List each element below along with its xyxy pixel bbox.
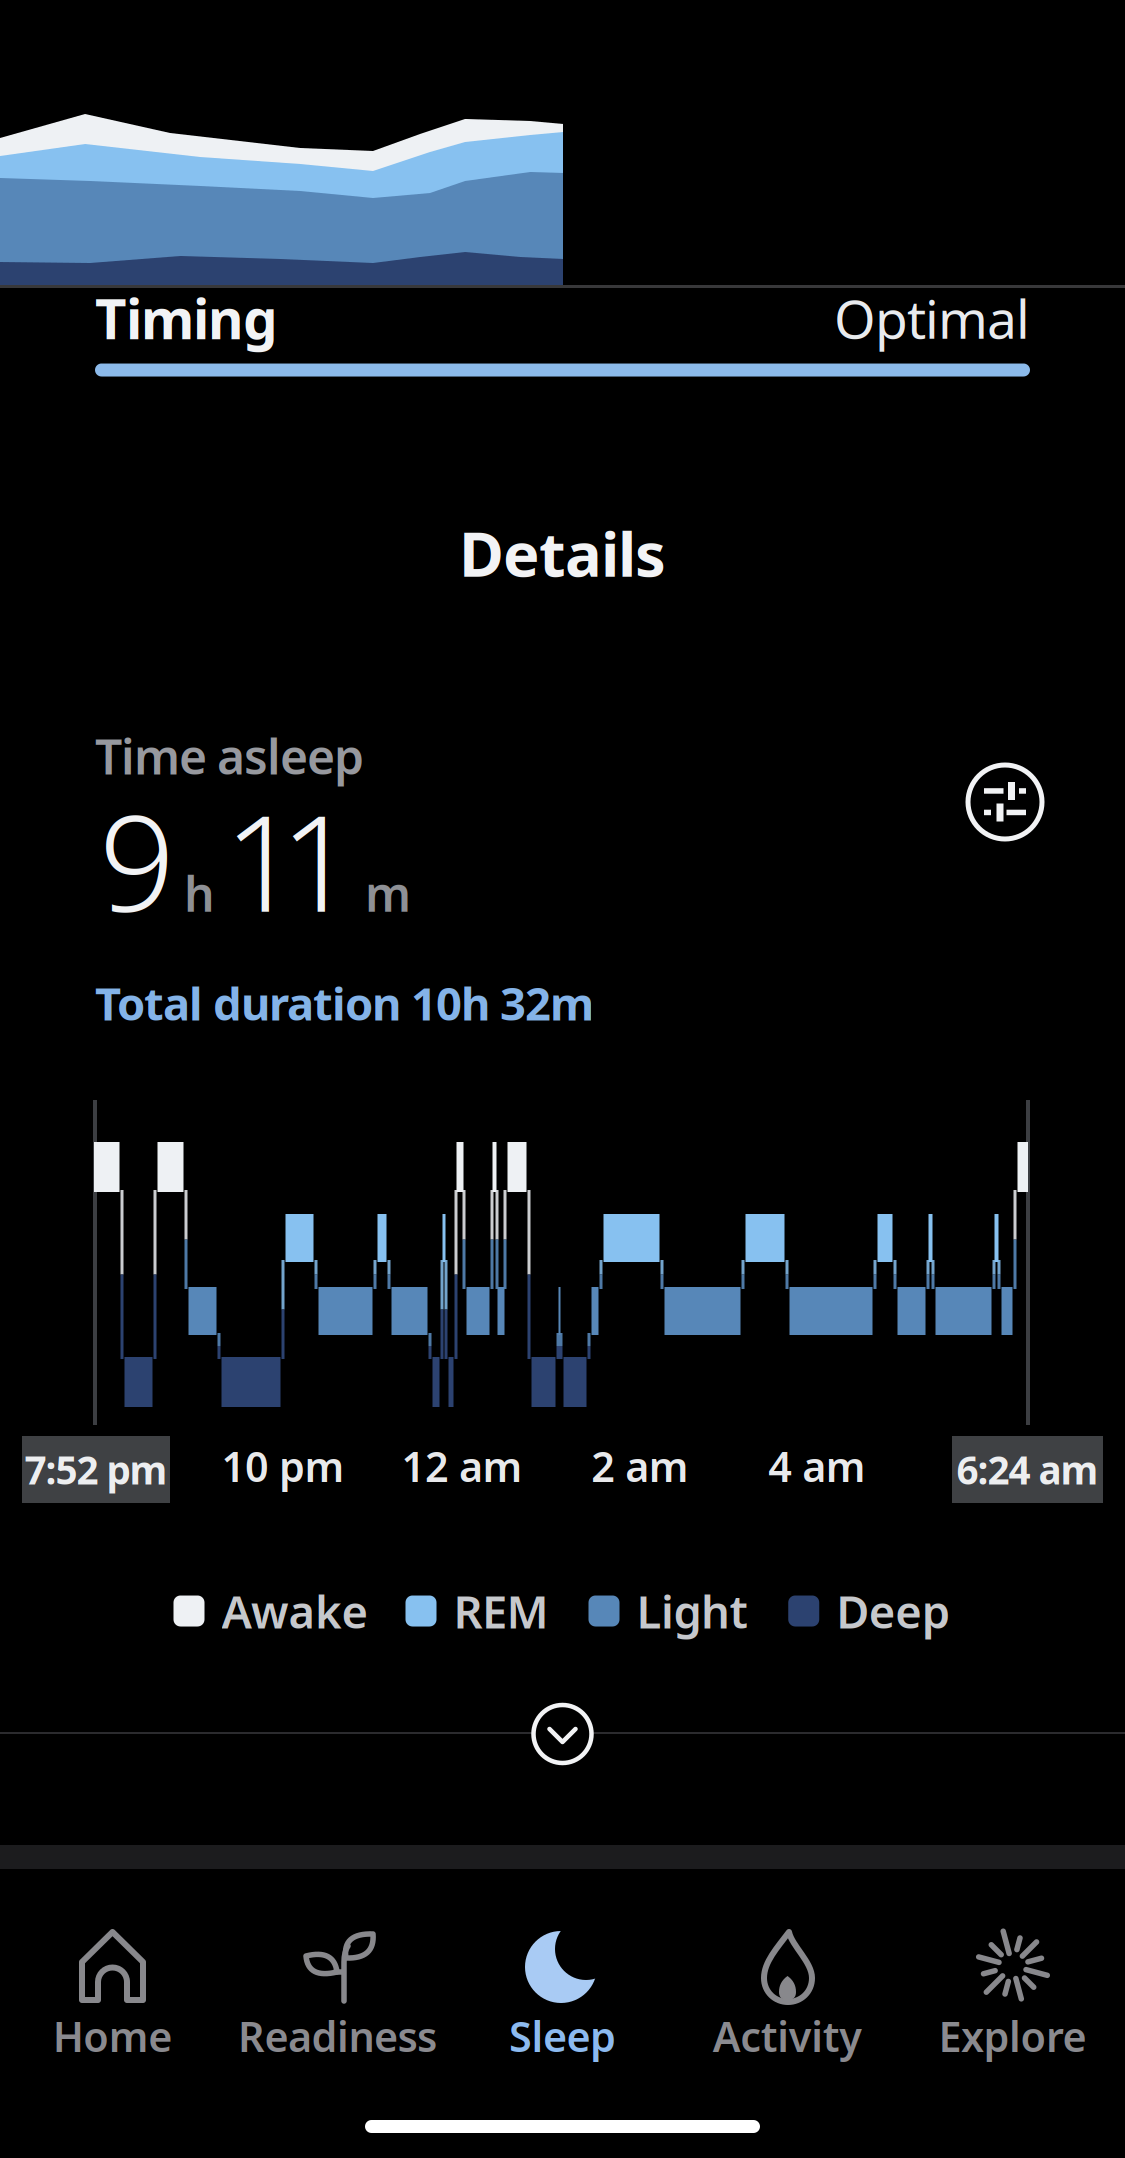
staticText: Details: [459, 512, 666, 594]
staticText: Timing: [95, 282, 278, 354]
staticText: 4 am: [768, 1439, 866, 1493]
staticText: 7:52 pm: [24, 1444, 167, 1495]
staticText: 11: [224, 771, 356, 949]
button[interactable]: [527, 1699, 597, 1769]
staticText: 10 pm: [221, 1439, 344, 1493]
button[interactable]: Explore: [900, 1930, 1125, 2060]
staticText: REM: [453, 1581, 548, 1641]
staticText: Time asleep: [95, 724, 364, 788]
staticText: 2 am: [591, 1439, 689, 1493]
button[interactable]: Sleep: [450, 1930, 675, 2060]
staticText: h: [184, 861, 215, 925]
staticText: Readiness: [238, 2009, 437, 2063]
staticText: Sleep: [509, 2009, 616, 2063]
staticText: 12 am: [401, 1439, 522, 1493]
staticText: Optimal: [834, 283, 1030, 353]
staticText: 6:24 am: [956, 1444, 1098, 1495]
staticText: Explore: [938, 2009, 1086, 2063]
button[interactable]: Activity: [675, 1930, 900, 2060]
button[interactable]: Readiness: [225, 1930, 450, 2060]
button[interactable]: Home: [0, 1930, 225, 2060]
button[interactable]: [960, 757, 1050, 847]
staticText: Activity: [713, 2009, 862, 2063]
staticText: Light: [636, 1581, 747, 1641]
staticText: Deep: [836, 1581, 950, 1641]
staticText: m: [365, 861, 411, 925]
staticText: Total duration 10h 32m: [95, 973, 594, 1033]
staticText: Home: [53, 2009, 172, 2063]
staticText: 9: [99, 771, 175, 949]
staticText: Awake: [221, 1581, 368, 1641]
